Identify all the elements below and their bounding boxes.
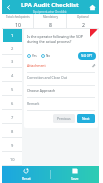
staticText: 9	[11, 143, 14, 148]
staticText: Equipment-wise Checklist	[33, 10, 67, 14]
button[interactable]: Yes	[27, 54, 37, 58]
staticText: 8	[11, 129, 14, 134]
button[interactable]: Home	[85, 0, 99, 14]
button[interactable]: 8	[2, 124, 22, 138]
staticText: Next	[82, 116, 90, 121]
button[interactable]: Next	[77, 114, 95, 123]
staticText: Mandatory	[43, 15, 58, 19]
staticText: 6	[11, 101, 14, 106]
staticText: Attachment	[27, 63, 46, 68]
button[interactable]: 2	[2, 42, 22, 55]
button[interactable]: N/A OPT	[78, 52, 96, 60]
staticText: Total checkpoints	[6, 15, 30, 19]
button[interactable]: 7	[2, 110, 22, 124]
staticText: Is the operator following the SOP during…	[27, 34, 90, 44]
button[interactable]: Reset	[2, 166, 50, 183]
staticText: LPA Audit Checklist	[21, 1, 79, 9]
button[interactable]: Total checkpoints	[2, 14, 33, 28]
button[interactable]: No	[41, 54, 51, 58]
button[interactable]: Mandatory	[34, 14, 66, 28]
staticText: 10	[10, 157, 15, 162]
button[interactable]: Optional	[67, 14, 99, 28]
staticText: Optional	[77, 15, 89, 19]
button[interactable]: 9	[2, 138, 22, 152]
button[interactable]: 6	[2, 96, 22, 110]
staticText: Yes	[32, 54, 37, 58]
button[interactable]: Correction and Close Out	[27, 75, 68, 80]
button[interactable]: Back	[2, 0, 15, 14]
button[interactable]: Save	[51, 166, 99, 183]
staticText: Reset	[22, 176, 31, 181]
button[interactable]: Choose Approach	[27, 88, 56, 93]
staticText: 4	[11, 73, 14, 78]
other: Attach file	[92, 64, 96, 68]
staticText: 8	[49, 21, 52, 28]
button[interactable]: Remark	[27, 101, 40, 106]
staticText: 1	[11, 33, 14, 38]
button[interactable]: 3	[2, 55, 22, 68]
staticText: 2	[11, 46, 14, 51]
staticText: Save	[71, 176, 79, 181]
staticText: 7	[11, 115, 14, 120]
button[interactable]: 5	[2, 82, 22, 96]
staticText: No	[46, 54, 51, 58]
staticText: 2	[82, 21, 85, 28]
staticText: 3	[11, 59, 14, 64]
button[interactable]: Previous	[53, 114, 75, 123]
staticText: N/A OPT	[81, 54, 93, 58]
staticText: Previous	[57, 116, 71, 121]
button[interactable]: 1	[3, 29, 22, 42]
button[interactable]: 10	[2, 152, 22, 166]
button[interactable]: Attachment	[27, 63, 96, 68]
staticText: 10	[15, 21, 21, 28]
button[interactable]: 4	[2, 68, 22, 82]
staticText: 5	[11, 87, 14, 92]
